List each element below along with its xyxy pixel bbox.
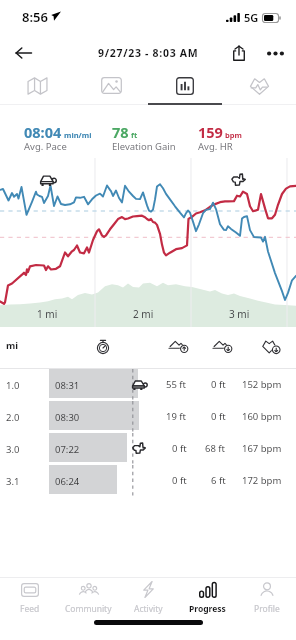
staticText: Avg. HR	[198, 140, 233, 153]
button[interactable]: Profile	[237, 578, 296, 615]
staticText: 08:30	[55, 411, 80, 424]
button[interactable]: More options	[260, 38, 290, 68]
staticText: 3 mi	[229, 307, 250, 321]
button[interactable]: Back	[8, 38, 38, 68]
staticText: 68 ft	[205, 442, 226, 455]
staticText: mi	[6, 339, 19, 352]
button[interactable]: 2.0	[0, 401, 296, 433]
button[interactable]: Progress	[178, 578, 237, 615]
button[interactable]: 1.0	[0, 369, 296, 401]
button[interactable]: Community	[59, 578, 118, 615]
staticText: 3.1	[6, 475, 20, 488]
button[interactable]: Map	[0, 70, 74, 105]
staticText: 152 bpm	[242, 378, 282, 391]
staticText: 1.0	[6, 379, 20, 392]
staticText: 07:22	[55, 443, 80, 456]
staticText: 1 mi	[37, 307, 58, 321]
button[interactable]: Photos	[74, 70, 148, 105]
staticText: 8:56	[22, 8, 48, 26]
staticText: 3.0	[6, 443, 20, 456]
staticText: 0 ft	[172, 474, 187, 487]
staticText: Elevation Gain	[112, 140, 176, 153]
staticText: 0 ft	[211, 378, 226, 391]
staticText: bpm	[225, 130, 243, 140]
staticText: 19 ft	[166, 410, 187, 423]
button[interactable]: Share	[224, 38, 254, 68]
staticText: 78	[112, 122, 129, 142]
staticText: Progress	[189, 603, 226, 615]
staticText: 6 ft	[211, 474, 226, 487]
button[interactable]: Charts	[148, 70, 222, 105]
staticText: Activity	[134, 603, 163, 615]
button[interactable]: Activity	[119, 578, 178, 615]
staticText: 5G	[244, 10, 259, 25]
button[interactable]: 3.0	[0, 433, 296, 465]
staticText: 172 bpm	[242, 474, 282, 487]
staticText: ft	[131, 130, 138, 140]
staticText: Feed	[20, 603, 40, 615]
staticText: 08:31	[55, 379, 80, 392]
staticText: 167 bpm	[242, 442, 282, 455]
staticText: 2.0	[6, 411, 20, 424]
staticText: Avg. Pace	[24, 140, 67, 153]
button[interactable]: Feed	[0, 578, 59, 615]
staticText: 160 bpm	[242, 410, 282, 423]
staticText: 159	[198, 122, 223, 142]
staticText: Community	[65, 603, 112, 615]
staticText: 9/27/23 - 8:03 AM	[98, 46, 199, 60]
staticText: 2 mi	[133, 307, 154, 321]
staticText: 0 ft	[172, 442, 187, 455]
staticText: 08:04	[24, 122, 62, 142]
staticText: 0 ft	[211, 410, 226, 423]
staticText: 06:24	[55, 475, 80, 488]
staticText: 55 ft	[166, 378, 187, 391]
button[interactable]: Heart rate	[222, 70, 296, 105]
staticText: Profile	[254, 603, 280, 615]
button[interactable]: 3.1	[0, 465, 296, 497]
staticText: min/mi	[64, 130, 92, 140]
